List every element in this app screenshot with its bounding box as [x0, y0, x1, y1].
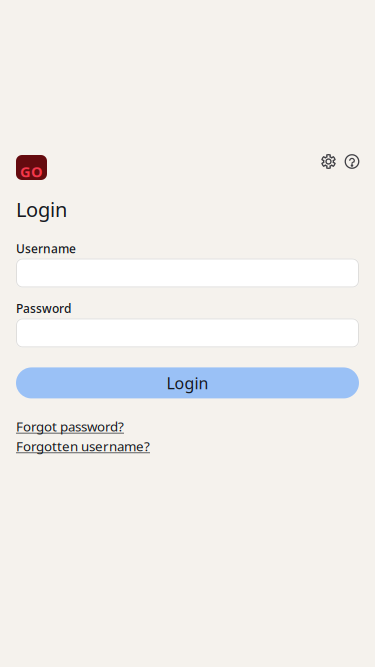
staticText: Password [16, 300, 71, 316]
staticText: Username [16, 241, 76, 256]
staticText: GO [20, 162, 43, 181]
staticText: Login [16, 196, 67, 223]
staticText: Forgotten username? [16, 437, 150, 455]
staticText: Forgot password? [16, 417, 124, 435]
staticText: Login [166, 372, 208, 393]
button[interactable]: Help [343, 155, 359, 180]
button[interactable]: Forgotten username? [16, 437, 150, 455]
button[interactable]: Login [16, 367, 359, 398]
button[interactable]: Forgot password? [16, 417, 124, 435]
button[interactable]: Settings [320, 155, 343, 180]
